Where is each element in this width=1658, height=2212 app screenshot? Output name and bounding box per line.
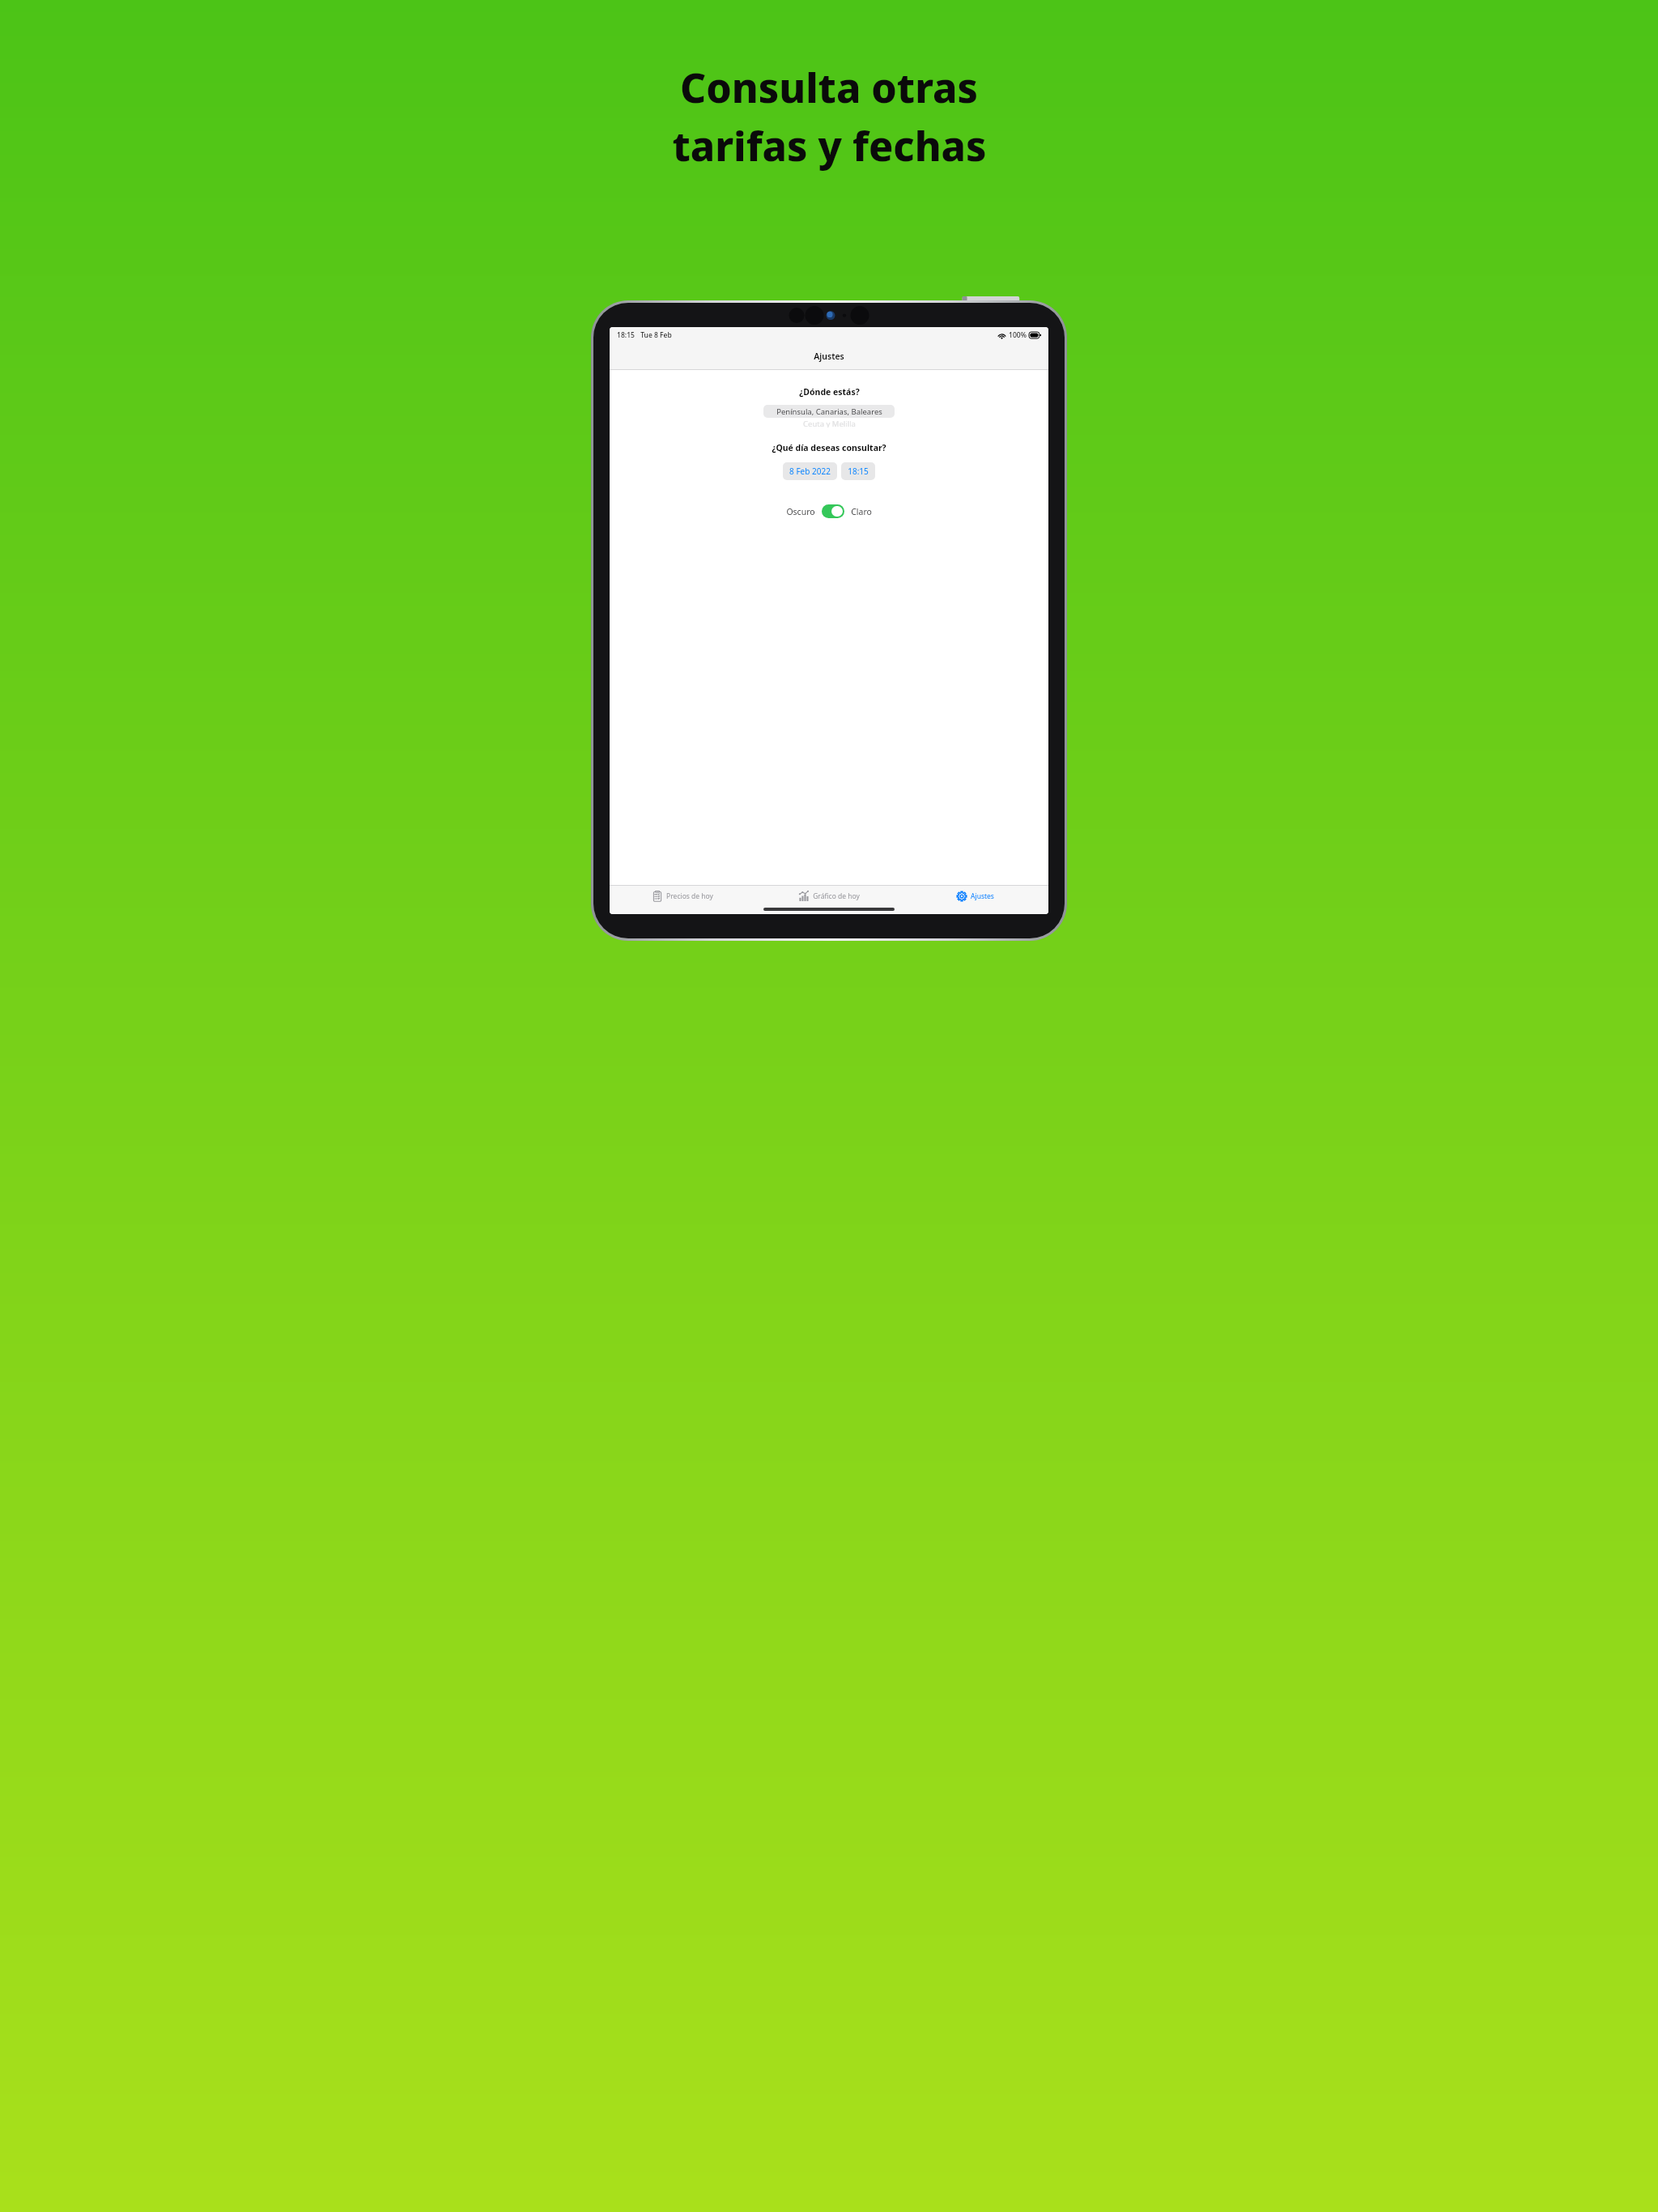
staticText: Consulta otras bbox=[680, 60, 978, 115]
button[interactable]: 18:15 bbox=[841, 462, 875, 480]
staticText: Gráfico de hoy bbox=[813, 891, 860, 901]
button[interactable]: Ajustes bbox=[902, 886, 1048, 906]
staticText: Ajustes bbox=[971, 891, 994, 901]
staticText: 100% bbox=[1009, 330, 1027, 340]
staticText: Ceuta y Melilla bbox=[803, 419, 856, 428]
staticText: 8 Feb 2022 bbox=[789, 466, 831, 477]
staticText: Oscuro bbox=[786, 506, 815, 517]
button[interactable]: Península, Canarias, Baleares bbox=[763, 405, 895, 429]
button[interactable]: Oscuro bbox=[781, 502, 877, 521]
staticText: ¿Dónde estás? bbox=[799, 386, 860, 398]
staticText: Península, Canarias, Baleares bbox=[776, 406, 882, 417]
staticText: Ajustes bbox=[814, 351, 844, 362]
staticText: 18:15 bbox=[617, 330, 635, 340]
button[interactable]: 8 Feb 2022 bbox=[783, 462, 837, 480]
button[interactable]: Gráfico de hoy bbox=[755, 886, 902, 906]
staticText: Claro bbox=[851, 506, 872, 517]
staticText: Tue 8 Feb bbox=[640, 330, 672, 340]
staticText: ¿Qué día deseas consultar? bbox=[772, 442, 886, 453]
button[interactable]: Precios de hoy bbox=[610, 886, 755, 906]
staticText: tarifas y fechas bbox=[672, 118, 987, 173]
staticText: Precios de hoy bbox=[666, 891, 713, 901]
staticText: 18:15 bbox=[848, 466, 869, 477]
